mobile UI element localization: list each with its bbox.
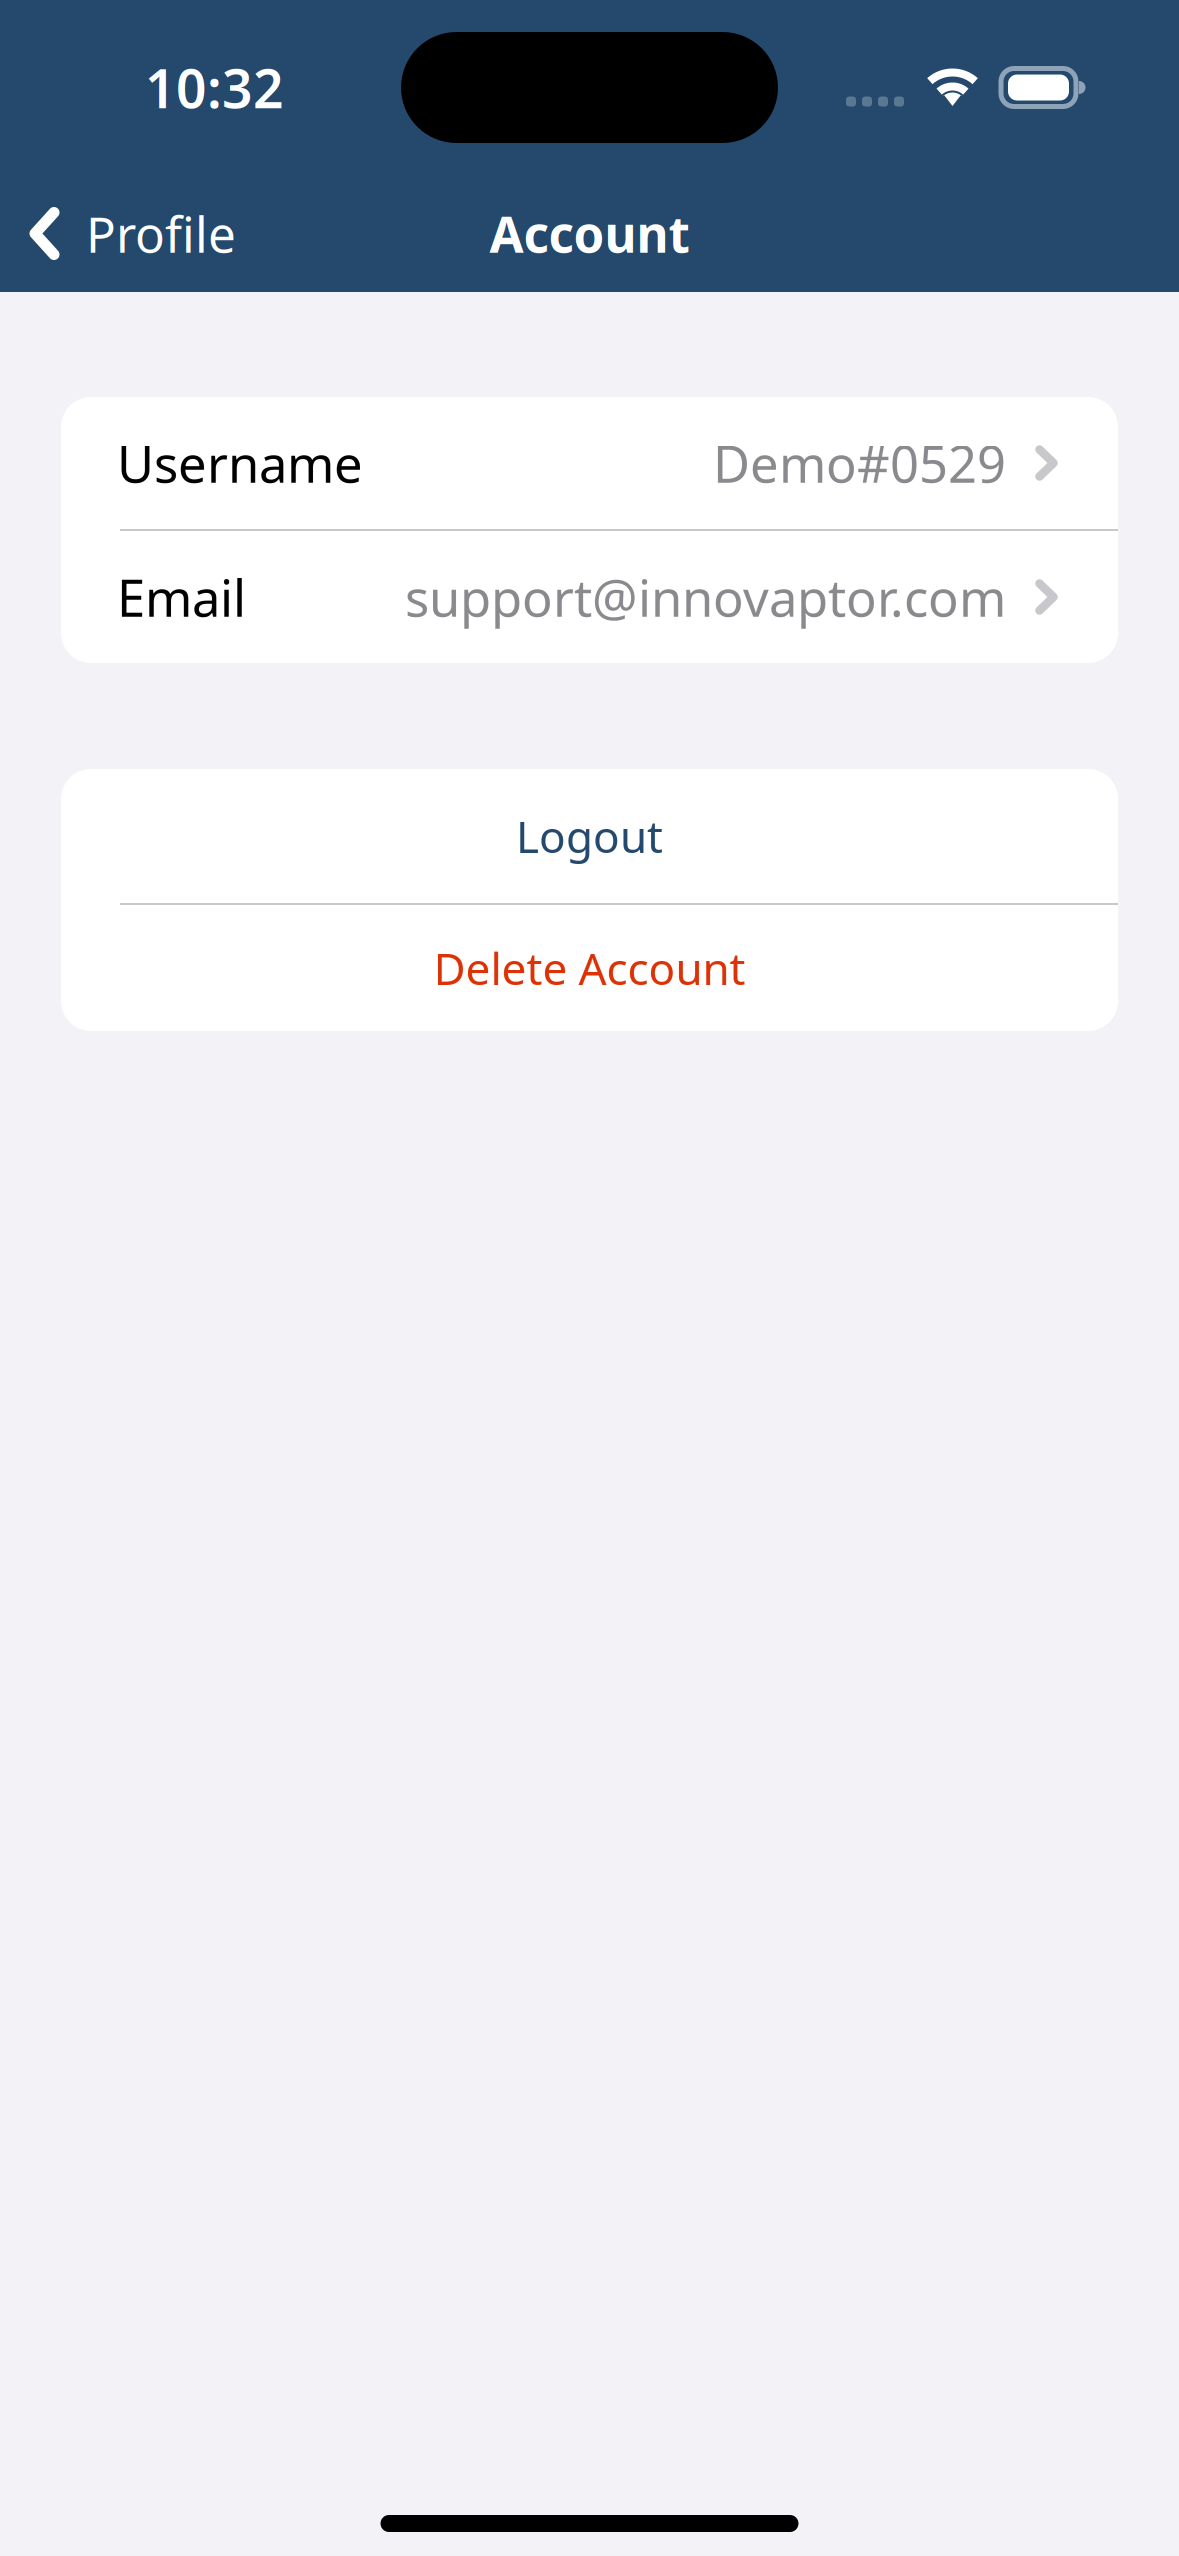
staticText: Account [489,201,689,266]
staticText: 10:32 [145,52,284,123]
staticText: Delete Account [433,939,745,997]
staticText: Logout [516,807,663,865]
button[interactable]: Delete Account [61,905,1118,1031]
button[interactable]: Profile [0,175,256,292]
staticText: Username [117,429,363,497]
staticText: Profile [86,201,236,266]
button[interactable]: Logout [61,769,1118,903]
button[interactable]: Email [61,531,1118,663]
button[interactable]: Username [61,397,1118,529]
staticText: Demo#0529 [713,429,1006,497]
staticText: support@innovaptor.com [405,563,1006,631]
staticText: Email [117,563,246,631]
